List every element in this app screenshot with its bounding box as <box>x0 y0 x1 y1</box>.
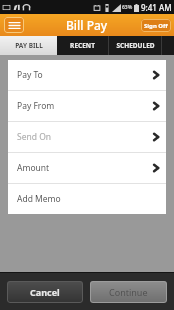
staticText: Send On <box>17 131 52 143</box>
button[interactable]: Pay From <box>8 91 166 121</box>
button[interactable]: Continue <box>90 281 167 303</box>
staticText: SCHEDULED <box>116 41 155 50</box>
button[interactable]: Menu <box>4 17 24 33</box>
staticText: Bill Pay <box>66 17 108 33</box>
staticText: Pay To <box>17 69 43 81</box>
button[interactable]: PAY BILL <box>0 36 57 55</box>
staticText: RECENT <box>70 41 95 50</box>
staticText: Add Memo <box>17 193 61 205</box>
staticText: Amount <box>17 162 50 174</box>
button[interactable]: SCHEDULED <box>109 36 161 55</box>
button[interactable]: Cancel <box>7 281 83 303</box>
button[interactable]: Amount <box>8 153 166 183</box>
staticText: Cancel <box>30 286 60 298</box>
staticText: 9:41 AM <box>141 2 172 13</box>
button[interactable]: RECENT <box>57 36 108 55</box>
button[interactable]: Add Memo <box>8 184 166 214</box>
staticText: Continue <box>109 286 148 298</box>
staticText: 63% <box>122 4 133 11</box>
button[interactable]: Sign Off <box>141 19 171 32</box>
button[interactable]: Pay To <box>8 60 166 90</box>
staticText: PAY BILL <box>15 41 43 50</box>
staticText: Sign Off <box>144 22 168 30</box>
button[interactable]: Send On <box>8 122 166 152</box>
staticText: Pay From <box>17 100 55 112</box>
